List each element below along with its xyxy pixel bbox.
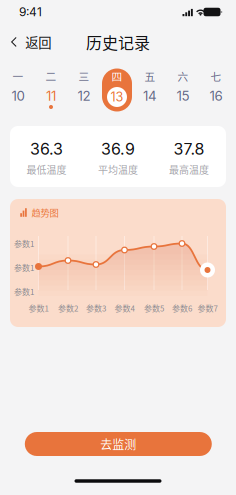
staticText: 参数1 (28, 302, 48, 314)
staticText: 七 (210, 68, 221, 84)
staticText: 参数2 (58, 302, 78, 314)
button[interactable]: 去监测 (25, 432, 212, 456)
staticText: 36.9 (101, 139, 135, 159)
staticText: 37.8 (173, 139, 204, 159)
button[interactable]: 二 (34, 62, 67, 114)
staticText: 参数7 (197, 302, 217, 314)
staticText: 15 (176, 88, 189, 104)
staticText: 12 (77, 88, 90, 104)
staticText: 历史记录 (86, 30, 150, 54)
staticText: 参数5 (144, 302, 164, 314)
staticText: 去监测 (100, 435, 136, 453)
button[interactable]: 四 (100, 62, 133, 114)
staticText: 五 (144, 68, 155, 84)
staticText: 二 (45, 68, 56, 84)
staticText: 参数4 (114, 302, 134, 314)
staticText: 三 (78, 68, 89, 84)
staticText: 16 (209, 88, 222, 104)
button[interactable]: 六 (166, 62, 199, 114)
staticText: 36.3 (30, 139, 63, 159)
staticText: 参数1 (14, 238, 34, 249)
staticText: 13 (110, 89, 123, 105)
staticText: 一 (12, 68, 23, 84)
button[interactable]: 返回 (0, 28, 62, 56)
staticText: 10 (11, 88, 24, 104)
button[interactable]: 五 (133, 62, 166, 114)
staticText: 参数3 (86, 302, 106, 314)
staticText: 四 (111, 68, 122, 84)
staticText: 参数1 (14, 262, 34, 273)
staticText: 平均温度 (98, 162, 138, 177)
staticText: 最低温度 (27, 162, 67, 177)
button[interactable]: 三 (67, 62, 100, 114)
button[interactable]: 一 (1, 62, 34, 114)
staticText: 参数1 (14, 286, 34, 297)
button[interactable]: 七 (199, 62, 232, 114)
staticText: 最高温度 (169, 162, 209, 177)
staticText: 11 (46, 88, 56, 104)
staticText: 趋势图 (31, 206, 58, 219)
staticText: 返回 (25, 32, 51, 52)
staticText: 9:41 (19, 5, 42, 19)
staticText: 参数6 (172, 302, 192, 314)
staticText: 14 (143, 88, 157, 104)
staticText: 六 (177, 68, 188, 84)
